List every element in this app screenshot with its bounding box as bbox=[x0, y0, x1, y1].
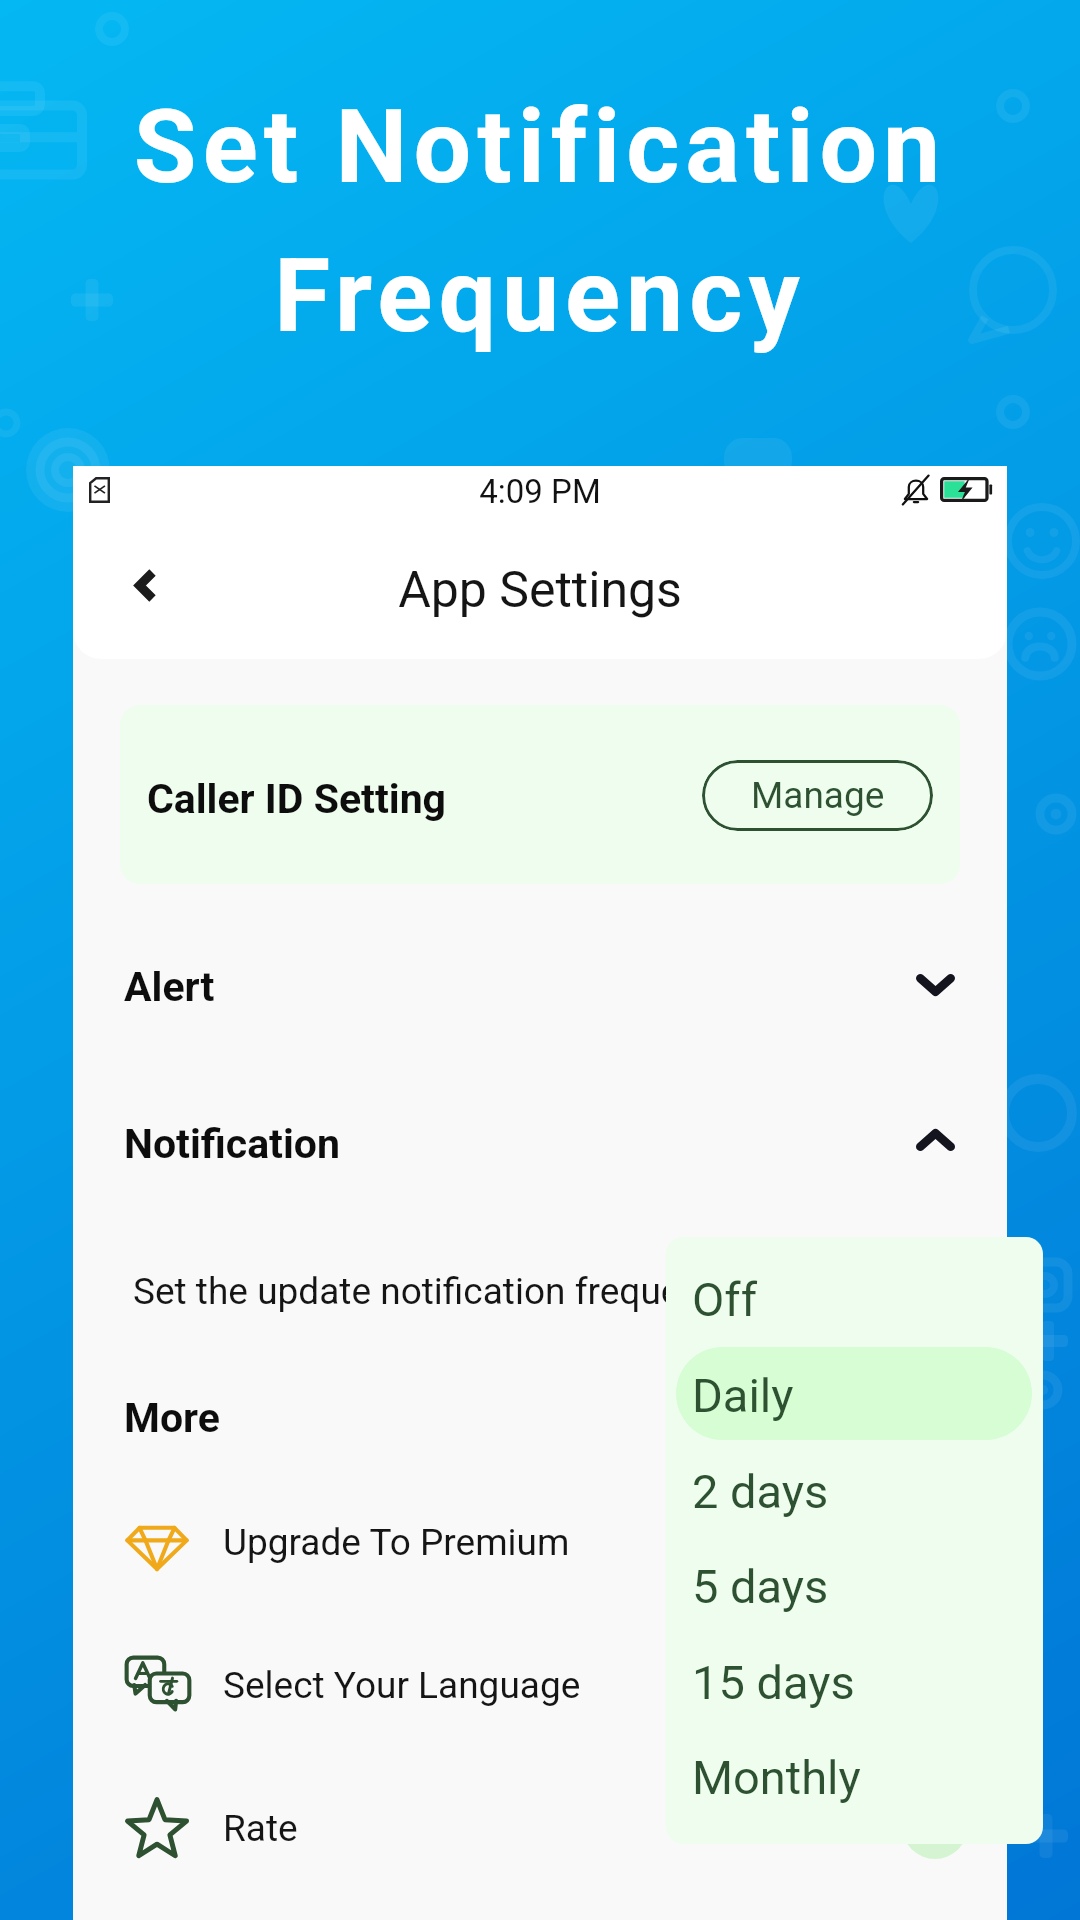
staticText: Monthly bbox=[692, 1750, 861, 1805]
staticText: 4:09 PM bbox=[73, 472, 1007, 511]
button[interactable]: 5 days bbox=[666, 1541, 1043, 1635]
staticText: Alert bbox=[124, 963, 215, 1011]
button[interactable]: Alert bbox=[73, 940, 1007, 1030]
button[interactable]: Off bbox=[666, 1254, 1043, 1348]
staticText: Off bbox=[692, 1272, 758, 1327]
staticText: Upgrade To Premium bbox=[223, 1521, 570, 1564]
button[interactable]: Manage bbox=[702, 760, 933, 831]
staticText: Daily bbox=[692, 1368, 794, 1423]
staticText: Set Notification Frequency bbox=[0, 87, 1080, 356]
staticText: 15 days bbox=[692, 1655, 855, 1710]
staticText: Rate bbox=[223, 1807, 298, 1850]
button[interactable]: Select Your Language bbox=[73, 1623, 1007, 1747]
staticText: Select Your Language bbox=[223, 1664, 581, 1707]
button[interactable]: Add bbox=[902, 1793, 968, 1859]
staticText: 2 days bbox=[692, 1464, 829, 1519]
button[interactable]: Rate bbox=[73, 1766, 1007, 1890]
button[interactable]: Upgrade To Premium bbox=[73, 1480, 1007, 1604]
button[interactable]: Daily bbox=[666, 1350, 1043, 1444]
staticText: Set the update notification frequency bbox=[133, 1270, 738, 1313]
button[interactable]: Caller ID Setting bbox=[120, 705, 960, 884]
button[interactable]: 15 days bbox=[666, 1637, 1043, 1731]
staticText: Notification bbox=[124, 1120, 340, 1168]
staticText: More bbox=[124, 1394, 220, 1442]
staticText: Caller ID Setting bbox=[147, 775, 447, 823]
staticText: 5 days bbox=[692, 1559, 829, 1614]
staticText: App Settings bbox=[73, 561, 1007, 620]
staticText: Manage bbox=[751, 774, 885, 817]
button[interactable]: Monthly bbox=[666, 1732, 1043, 1826]
button[interactable]: 2 days bbox=[666, 1446, 1043, 1540]
button[interactable]: Back bbox=[115, 554, 177, 616]
button[interactable]: Notification bbox=[73, 1095, 1007, 1185]
